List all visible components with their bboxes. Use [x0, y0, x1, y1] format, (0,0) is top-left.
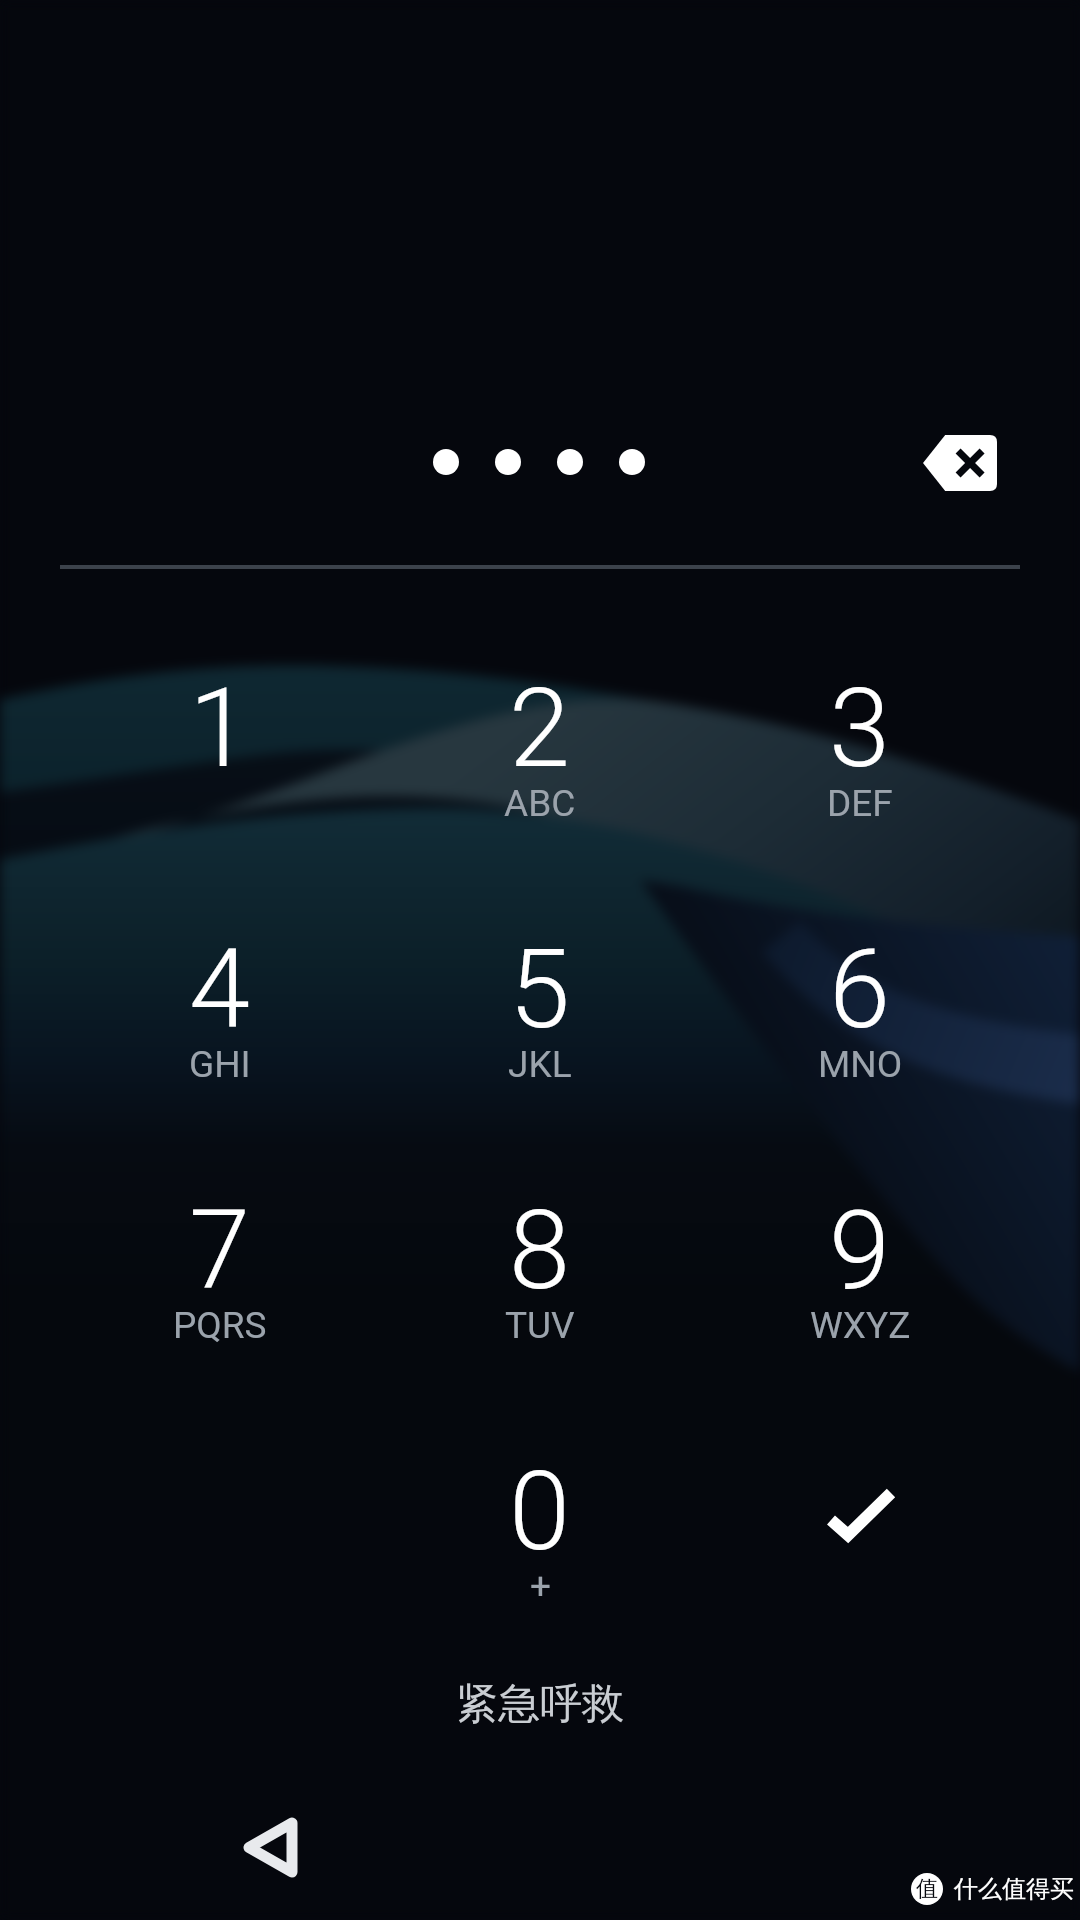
staticText: DEF [827, 782, 893, 825]
button[interactable]: 1 [70, 624, 370, 839]
staticText: 6 [829, 925, 891, 1054]
staticText: TUV [505, 1304, 575, 1347]
button[interactable]: 7 [70, 1146, 370, 1361]
staticText: 什么值得买 [954, 1874, 1074, 1904]
staticText: 3 [829, 664, 891, 793]
staticText: 紧急呼救 [456, 1678, 624, 1731]
staticText: JKL [508, 1043, 572, 1086]
staticText: 1 [189, 664, 251, 793]
staticText: 7 [189, 1186, 251, 1315]
button[interactable]: 5 [390, 885, 690, 1100]
button[interactable]: 0 [390, 1407, 690, 1622]
staticText: ABC [504, 782, 576, 825]
button[interactable]: 8 [390, 1146, 690, 1361]
staticText: 4 [189, 925, 251, 1054]
staticText: 9 [829, 1186, 891, 1315]
staticText: PQRS [173, 1304, 267, 1347]
button[interactable]: Confirm [710, 1425, 1010, 1635]
staticText: WXYZ [810, 1304, 911, 1347]
button[interactable]: 紧急呼救 [390, 1678, 690, 1758]
staticText: + [530, 1565, 551, 1608]
button[interactable]: 6 [710, 885, 1010, 1100]
staticText: 8 [509, 1186, 571, 1315]
button[interactable]: 3 [710, 624, 1010, 839]
staticText: 5 [509, 925, 571, 1054]
staticText: MNO [818, 1043, 903, 1086]
button[interactable]: 2 [390, 624, 690, 839]
button[interactable]: Back [210, 1792, 330, 1902]
staticText: 2 [509, 664, 571, 793]
button[interactable]: 4 [70, 885, 370, 1100]
button[interactable]: Delete [895, 405, 1025, 520]
staticText: 0 [509, 1447, 571, 1576]
button[interactable]: 9 [710, 1146, 1010, 1361]
staticText: 值 [916, 1875, 938, 1903]
staticText: GHI [189, 1043, 251, 1086]
